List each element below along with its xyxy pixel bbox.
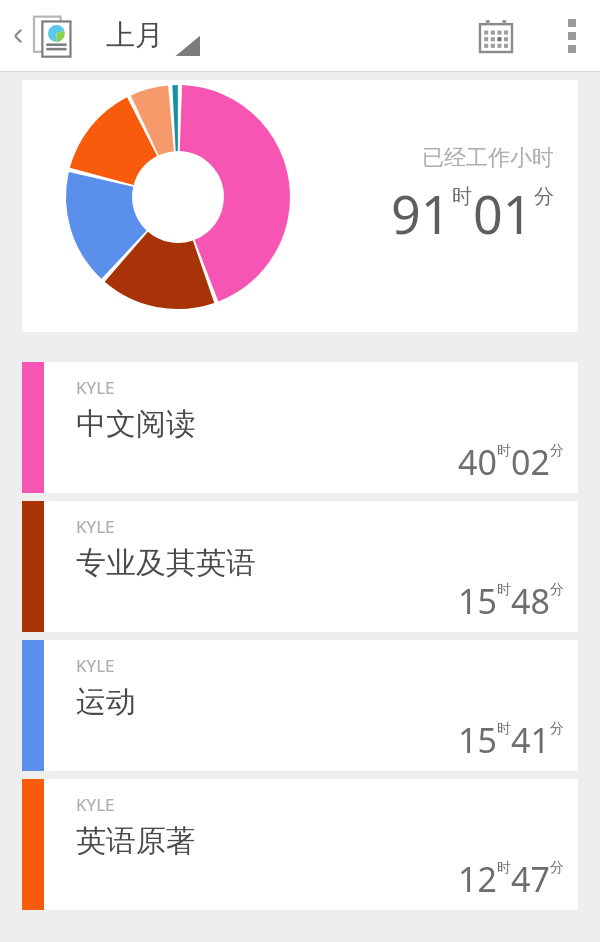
- staticText: 分: [550, 442, 564, 460]
- button[interactable]: 上月: [100, 13, 206, 58]
- staticText: 上月: [106, 17, 164, 54]
- staticText: 运动: [76, 683, 136, 721]
- staticText: KYLE: [76, 376, 115, 399]
- staticText: 02: [511, 439, 550, 485]
- staticText: KYLE: [76, 793, 115, 816]
- staticText: 英语原著: [76, 822, 196, 860]
- staticText: 时: [452, 184, 472, 209]
- button[interactable]: 已经工作小时: [22, 80, 578, 332]
- button[interactable]: KYLE: [22, 640, 578, 771]
- staticText: 时: [497, 442, 511, 460]
- staticText: 分: [550, 720, 564, 738]
- staticText: 48: [511, 578, 550, 624]
- button[interactable]: KYLE: [22, 362, 578, 493]
- staticText: 分: [534, 184, 554, 209]
- staticText: 91: [391, 178, 451, 249]
- button[interactable]: Back to reports: [4, 14, 78, 58]
- staticText: 12: [458, 856, 497, 902]
- staticText: 分: [550, 859, 564, 877]
- button[interactable]: More options: [552, 9, 592, 63]
- button[interactable]: KYLE: [22, 501, 578, 632]
- staticText: 分: [550, 581, 564, 599]
- staticText: KYLE: [76, 515, 115, 538]
- staticText: 已经工作小时: [422, 144, 554, 172]
- staticText: 专业及其英语: [76, 544, 256, 582]
- staticText: 中文阅读: [76, 405, 196, 443]
- staticText: 15: [458, 717, 497, 763]
- staticText: 时: [497, 859, 511, 877]
- staticText: 时: [497, 581, 511, 599]
- button[interactable]: Calendar: [470, 10, 522, 62]
- staticText: 47: [511, 856, 550, 902]
- staticText: 41: [511, 717, 550, 763]
- staticText: 40: [458, 439, 497, 485]
- staticText: 01: [473, 178, 533, 249]
- staticText: 时: [497, 720, 511, 738]
- button[interactable]: KYLE: [22, 779, 578, 910]
- staticText: 15: [458, 578, 497, 624]
- staticText: KYLE: [76, 654, 115, 677]
